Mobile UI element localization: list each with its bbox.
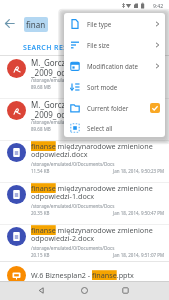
- staticText: finan: [26, 19, 46, 30]
- staticText: Current folder: [87, 104, 129, 112]
- staticText: W.6 Biznesplan2 - finanse.pptx: [31, 270, 134, 280]
- button[interactable]: Select all: [64, 118, 165, 137]
- staticText: 20.35 KB: [31, 210, 50, 216]
- staticText: M._Gorczyńska_Finanse_międzyn: [31, 57, 155, 68]
- staticText: Sort mode: [87, 83, 118, 91]
- button[interactable]: Sort mode: [64, 76, 165, 97]
- staticText: Jan 18, 2014, 9:50:47 PM: [113, 210, 165, 216]
- button[interactable]: File size: [64, 34, 165, 55]
- button[interactable]: [0, 98, 169, 140]
- staticText: File size: [87, 41, 110, 49]
- staticText: M._Gorczyńska_Finanse_międzyn: [31, 99, 155, 110]
- button[interactable]: [0, 263, 169, 300]
- staticText: _2009_odpowiedzi_do_zadan.pdf: [31, 67, 154, 78]
- staticText: Jan 12, 2014, 8:41:02 PM: [113, 84, 165, 90]
- staticText: Select all: [87, 124, 113, 132]
- button[interactable]: Current folder: [64, 97, 165, 118]
- staticText: odpowiedzi-1.docx: [31, 191, 94, 201]
- staticText: /storage/emulated/0/Documents/Docs: [31, 245, 115, 251]
- staticText: 20.15 KB: [31, 252, 50, 258]
- staticText: /storage/emulated/0/Documents/Docs: [31, 161, 115, 167]
- button[interactable]: [122, 287, 129, 294]
- staticText: 11.54 KB: [31, 168, 50, 174]
- staticText: odpowiedzi.docx: [31, 149, 88, 159]
- staticText: 89.68 MB: [31, 84, 51, 90]
- button[interactable]: SEARCH RESULTS: [23, 43, 86, 53]
- staticText: Modification date: [87, 62, 138, 70]
- staticText: Jan 18, 2014, 9:51:07 PM: [113, 252, 165, 258]
- button[interactable]: [0, 224, 169, 266]
- button[interactable]: Modification date: [64, 55, 165, 76]
- staticText: /storage/emulated/0/Documents/Docs: [31, 77, 115, 83]
- button[interactable]: [38, 287, 45, 294]
- staticText: File type: [87, 20, 112, 28]
- staticText: 9:42: [153, 2, 164, 9]
- staticText: /storage/emulated/0/Documents/Docs: [31, 119, 115, 125]
- button[interactable]: [0, 140, 169, 182]
- staticText: finanse międzynarodowe zmienione: [31, 225, 153, 235]
- staticText: _2009_odpowiedzi_do_zadan.pdf: [31, 109, 154, 120]
- button[interactable]: [0, 182, 169, 224]
- staticText: SEARCH RESULTS: [23, 43, 86, 53]
- staticText: odpowiedzi-2.docx: [31, 233, 94, 243]
- staticText: Jan 18, 2014, 9:50:23 PM: [113, 168, 165, 174]
- button[interactable]: [0, 56, 169, 98]
- staticText: 89.68 MB: [31, 126, 51, 132]
- staticText: finanse międzynarodowe zmienione: [31, 183, 153, 193]
- button[interactable]: [81, 287, 88, 294]
- button[interactable]: finan: [26, 19, 46, 30]
- staticText: /storage/emulated/0/Documents/Docs: [31, 203, 115, 209]
- button[interactable]: File type: [64, 13, 165, 34]
- button[interactable]: [3, 17, 21, 31]
- staticText: finanse międzynarodowe zmienione: [31, 141, 153, 151]
